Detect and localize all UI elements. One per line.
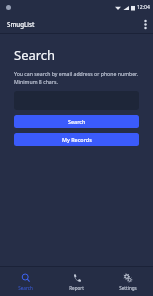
- staticText: Search: [68, 118, 86, 125]
- button[interactable]: Settings: [102, 270, 153, 294]
- button[interactable]: More options: [137, 14, 153, 34]
- button[interactable]: Search: [0, 270, 51, 294]
- staticText: My Records: [62, 136, 92, 143]
- staticText: Report: [69, 285, 84, 291]
- staticText: You can search by email address or phone…: [14, 70, 138, 77]
- staticText: SmugList: [7, 20, 35, 28]
- staticText: Search: [14, 46, 56, 64]
- staticText: Minimum 8 chars.: [14, 78, 58, 85]
- button[interactable]: Search: [14, 115, 139, 128]
- staticText: 12:04: [137, 4, 150, 11]
- button[interactable]: My Records: [14, 133, 139, 146]
- staticText: Search: [18, 285, 33, 291]
- staticText: Settings: [119, 285, 137, 291]
- button[interactable]: Report: [51, 270, 102, 294]
